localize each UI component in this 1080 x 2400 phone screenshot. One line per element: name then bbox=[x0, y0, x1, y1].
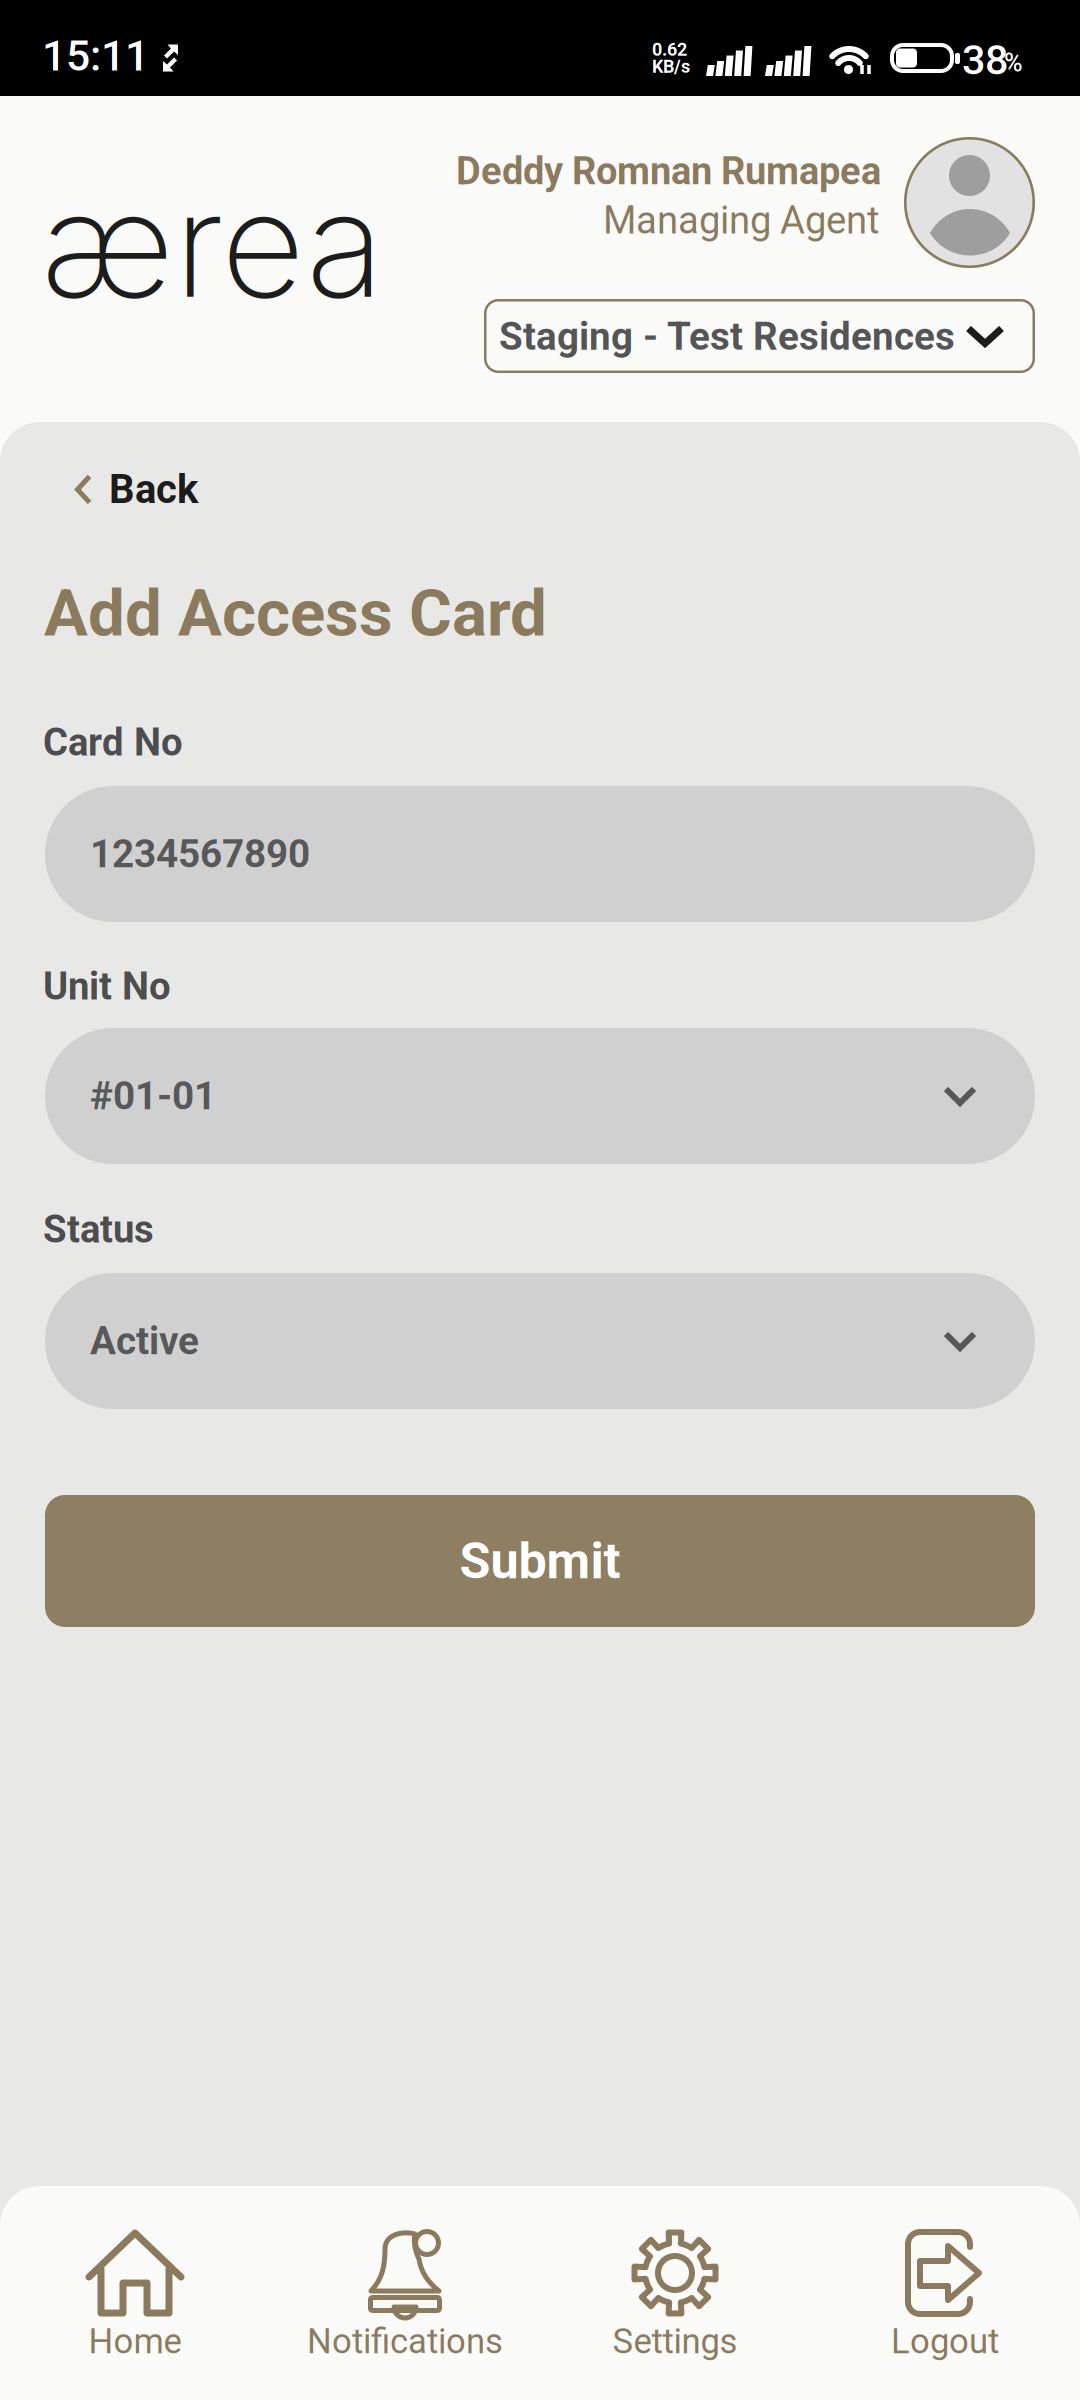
staticText: Home bbox=[88, 2321, 181, 2362]
staticText: Settings bbox=[612, 2321, 737, 2362]
staticText: Deddy Romnan Rumapea bbox=[456, 149, 881, 193]
button[interactable]: Submit bbox=[45, 1495, 1035, 1627]
staticText: Card No bbox=[43, 720, 183, 765]
staticText: Logout bbox=[891, 2321, 999, 2362]
button[interactable]: Home bbox=[0, 2186, 270, 2400]
button[interactable]: Back bbox=[57, 450, 222, 529]
staticText: Add Access Card bbox=[44, 575, 547, 652]
staticText: 15:11 bbox=[42, 31, 149, 81]
button[interactable]: 1234567890 bbox=[45, 786, 1035, 922]
staticText: Submit bbox=[459, 1531, 620, 1590]
staticText: 38 bbox=[962, 36, 1008, 84]
staticText: 1234567890 bbox=[90, 831, 310, 877]
button[interactable]: Staging - Test Residences bbox=[484, 299, 1035, 373]
staticText: Staging - Test Residences bbox=[499, 314, 955, 359]
button[interactable]: Notifications bbox=[270, 2186, 540, 2400]
staticText: 0.62 bbox=[652, 39, 687, 60]
staticText: Managing Agent bbox=[603, 198, 880, 243]
staticText: Notifications bbox=[307, 2321, 503, 2362]
staticText: #01-01 bbox=[90, 1073, 216, 1119]
button[interactable]: Settings bbox=[540, 2186, 810, 2400]
staticText: Active bbox=[90, 1318, 199, 1364]
staticText: Unit No bbox=[43, 964, 171, 1009]
button[interactable]: #01-01 bbox=[45, 1028, 1035, 1164]
button[interactable]: Logout bbox=[810, 2186, 1080, 2400]
staticText: % bbox=[1004, 48, 1023, 78]
button[interactable]: Active bbox=[45, 1273, 1035, 1409]
staticText: Back bbox=[109, 466, 198, 513]
staticText: KB/s bbox=[652, 56, 690, 77]
staticText: ærea bbox=[41, 156, 384, 332]
staticText: Status bbox=[43, 1207, 154, 1252]
